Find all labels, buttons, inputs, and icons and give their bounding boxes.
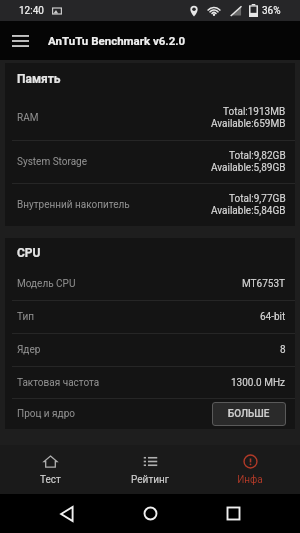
button[interactable]: Модель CPU — [5, 268, 295, 300]
staticText: 36% — [262, 5, 281, 17]
staticText: MT6753T — [242, 278, 286, 290]
staticText: 64-bit — [260, 311, 286, 323]
button[interactable]: Open navigation menu — [4, 24, 37, 57]
staticText: Память — [17, 72, 61, 86]
button[interactable]: Back — [44, 494, 90, 533]
staticText: Total:1913MB — [223, 106, 286, 118]
staticText: AnTuTu Benchmark v6.2.0 — [48, 34, 186, 47]
staticText: Проц и ядро — [17, 408, 75, 420]
button[interactable]: RAM — [5, 95, 295, 140]
staticText: Available:5,84GB — [211, 205, 286, 217]
staticText: Внутренний накопитель — [17, 199, 130, 211]
staticText: Total:9,77GB — [229, 193, 286, 205]
button[interactable]: Инфа — [200, 445, 300, 494]
staticText: 8 — [280, 344, 286, 356]
staticText: Available:5,89GB — [211, 162, 286, 174]
button[interactable]: Тактовая частота — [5, 367, 295, 398]
staticText: Тест — [40, 474, 61, 486]
button[interactable]: Тип — [5, 301, 295, 333]
button[interactable]: System Storage — [5, 141, 295, 183]
button[interactable]: Внутренний накопитель — [5, 184, 295, 226]
button[interactable]: Recent apps — [210, 494, 256, 533]
staticText: Тактовая частота — [17, 377, 100, 389]
button[interactable]: Тест — [0, 445, 100, 494]
button[interactable]: Home — [127, 494, 173, 533]
staticText: Available:659MB — [211, 118, 286, 130]
staticText: Инфа — [237, 474, 263, 486]
staticText: RAM — [17, 112, 39, 124]
staticText: Ядер — [17, 344, 41, 356]
button[interactable]: Ядер — [5, 334, 295, 366]
staticText: Тип — [17, 311, 34, 323]
staticText: Модель CPU — [17, 278, 76, 290]
staticText: CPU — [17, 246, 41, 260]
button[interactable]: Рейтинг — [100, 445, 200, 494]
staticText: Total:9,82GB — [229, 150, 286, 162]
button[interactable]: БОЛЬШЕ — [212, 402, 286, 426]
staticText: Рейтинг — [131, 474, 169, 486]
staticText: System Storage — [17, 156, 88, 168]
staticText: 1300.0 MHz — [231, 377, 286, 389]
staticText: 12:40 — [19, 5, 44, 17]
staticText: БОЛЬШЕ — [228, 408, 270, 420]
